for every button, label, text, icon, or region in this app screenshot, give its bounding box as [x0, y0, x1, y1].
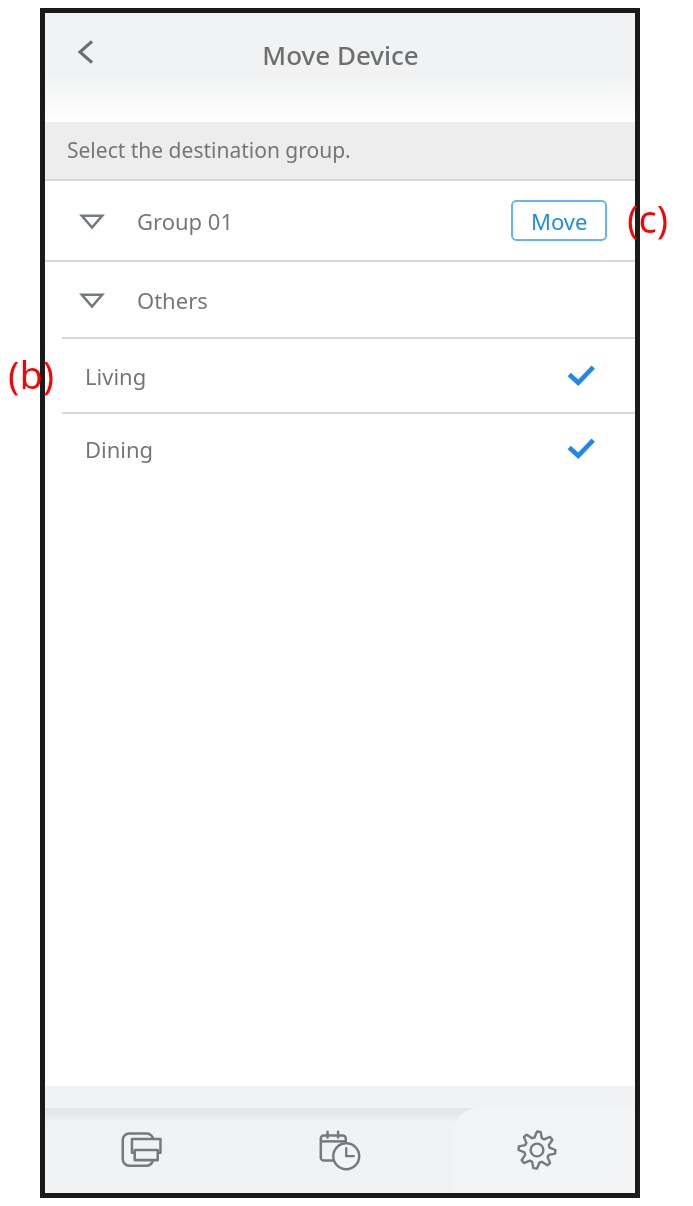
staticText: (c) [627, 192, 669, 244]
staticText: Others [137, 285, 208, 315]
button[interactable]: Settings [438, 1086, 635, 1193]
staticText: Move [531, 206, 588, 236]
button[interactable]: Living [45, 339, 635, 412]
staticText: Move Device [262, 37, 419, 72]
button[interactable]: Print [45, 1086, 241, 1193]
staticText: Group 01 [137, 206, 233, 236]
staticText: (b) [8, 348, 55, 400]
staticText: Select the destination group. [67, 136, 351, 165]
button[interactable]: Back [55, 21, 117, 83]
staticText: Living [85, 361, 147, 391]
button[interactable]: Dining [45, 414, 635, 483]
button[interactable]: Others [45, 262, 635, 337]
button[interactable]: Schedule [241, 1086, 438, 1193]
button[interactable]: Group 01 [45, 181, 635, 260]
staticText: Dining [85, 434, 154, 464]
button[interactable]: Move [511, 200, 607, 241]
